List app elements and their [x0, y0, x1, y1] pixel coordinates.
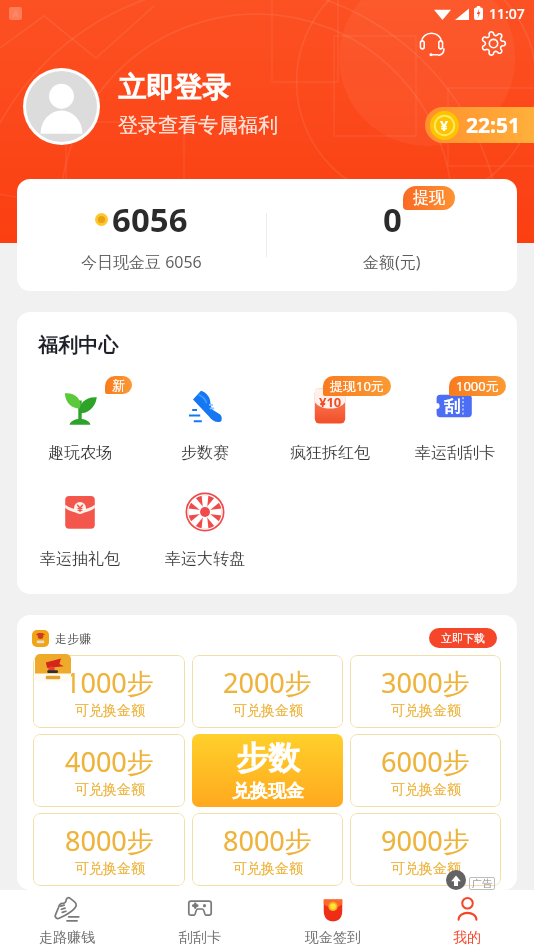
staticText: 6056 — [112, 197, 188, 242]
button[interactable]: 刮 — [392, 383, 517, 463]
staticText: 0 — [383, 197, 402, 242]
button[interactable]: 6000步 — [350, 734, 501, 807]
staticText: 提现10元 — [330, 377, 384, 395]
staticText: 1000元 — [456, 377, 499, 395]
staticText: 可兑换金额 — [75, 860, 145, 878]
button[interactable]: 4000步 — [33, 734, 185, 807]
button[interactable]: 3000步 — [350, 655, 501, 728]
staticText: 新 — [112, 377, 125, 393]
button[interactable]: 头像 — [26, 71, 97, 142]
staticText: 可兑换金额 — [75, 702, 145, 720]
button[interactable]: 提现 — [403, 186, 455, 210]
staticText: 4000步 — [65, 743, 154, 780]
staticText: 22:51 — [466, 111, 520, 140]
staticText: 疯狂拆红包 — [290, 443, 370, 463]
staticText: 广告 — [472, 877, 492, 890]
staticText: 8000步 — [223, 822, 312, 859]
button[interactable]: 客服 — [409, 21, 453, 65]
button[interactable]: 立即登录 — [118, 70, 278, 138]
button[interactable]: 走路赚钱 — [0, 892, 133, 950]
staticText: 刮刮卡 — [179, 929, 221, 947]
staticText: 福利中心 — [38, 333, 118, 358]
button[interactable]: 8000步 — [192, 813, 343, 886]
staticText: A — [13, 8, 19, 19]
staticText: 可兑换金额 — [233, 860, 303, 878]
button[interactable]: 2000步 — [192, 655, 343, 728]
staticText: 幸运大转盘 — [165, 549, 245, 569]
button[interactable]: 步数赛 — [142, 383, 267, 463]
staticText: 可兑换金额 — [391, 860, 461, 878]
button[interactable]: 立即下载 — [429, 628, 497, 648]
staticText: 6000步 — [381, 743, 470, 780]
staticText: 步数 — [236, 738, 300, 778]
staticText: 1000步 — [65, 664, 154, 701]
button[interactable]: ¥ — [425, 107, 534, 143]
staticText: 可兑换金额 — [233, 702, 303, 720]
button[interactable]: 新 — [17, 383, 142, 463]
staticText: 步数赛 — [181, 443, 229, 463]
button[interactable]: 6056 — [17, 179, 266, 291]
button[interactable]: 现金签到 — [266, 892, 400, 950]
button[interactable]: 0 — [267, 179, 517, 291]
button[interactable]: 8000步 — [33, 813, 185, 886]
staticText: 立即登录 — [118, 70, 230, 105]
staticText: 11:07 — [489, 4, 525, 23]
staticText: 可兑换金额 — [391, 781, 461, 799]
staticText: 今日现金豆 6056 — [81, 251, 202, 273]
staticText: 9000步 — [381, 822, 470, 859]
staticText: 8000步 — [65, 822, 154, 859]
button[interactable]: 步数 — [192, 734, 343, 807]
staticText: 立即下载 — [441, 631, 485, 645]
staticText: 现金签到 — [305, 929, 361, 947]
button[interactable]: ¥10 — [267, 383, 392, 463]
staticText: ¥ — [440, 116, 449, 135]
staticText: 2000步 — [223, 664, 312, 701]
staticText: 金额(元) — [363, 251, 421, 273]
button[interactable]: 1000步 — [33, 655, 185, 728]
staticText: 走步赚 — [55, 631, 91, 646]
button[interactable]: 幸运抽礼包 — [17, 489, 142, 569]
button[interactable]: 9000步 — [350, 813, 501, 886]
button[interactable]: 我的 — [400, 892, 534, 950]
staticText: 提现 — [413, 188, 445, 208]
staticText: 兑换现金 — [232, 780, 304, 803]
staticText: 刮 — [444, 397, 460, 417]
button[interactable]: 刮刮卡 — [133, 892, 266, 950]
staticText: 登录查看专属福利 — [118, 113, 278, 138]
button[interactable]: 设置 — [471, 21, 515, 65]
button[interactable]: 幸运大转盘 — [142, 489, 267, 569]
staticText: 可兑换金额 — [391, 702, 461, 720]
staticText: ¥10 — [319, 393, 342, 411]
staticText: 走路赚钱 — [39, 929, 95, 947]
staticText: 可兑换金额 — [75, 781, 145, 799]
staticText: 我的 — [453, 929, 481, 947]
staticText: 3000步 — [381, 664, 470, 701]
staticText: 幸运抽礼包 — [40, 549, 120, 569]
staticText: 幸运刮刮卡 — [415, 443, 495, 463]
staticText: 趣玩农场 — [48, 443, 112, 463]
